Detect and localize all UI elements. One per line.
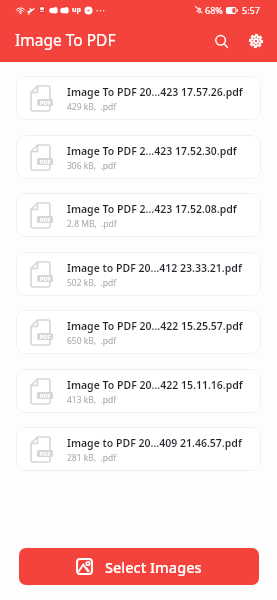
staticText: Select Images	[105, 557, 202, 577]
button[interactable]: Search	[207, 27, 235, 55]
button[interactable]: PDF	[16, 135, 261, 179]
button[interactable]: PDF	[16, 193, 261, 237]
button[interactable]: Settings	[242, 27, 270, 55]
staticText: Image To PDF 2...423 17.52.30.pdf	[67, 144, 237, 158]
button[interactable]: PDF	[16, 252, 261, 296]
staticText: PDF	[40, 99, 51, 106]
staticText: Image To PDF 20...422 15.25.57.pdf	[67, 319, 243, 333]
staticText: PDF	[40, 333, 51, 340]
staticText: Image To PDF 2...423 17.52.08.pdf	[67, 202, 237, 216]
staticText: 68%	[205, 4, 223, 16]
staticText: PDF	[40, 392, 51, 399]
staticText: PDF	[40, 158, 51, 165]
staticText: Image To PDF	[15, 29, 116, 50]
button[interactable]: PDF	[16, 310, 261, 354]
staticText: up	[72, 5, 81, 15]
staticText: 502 kB, .pdf	[67, 277, 117, 289]
staticText: Image to PDF 20...412 23.33.21.pdf	[67, 261, 242, 275]
staticText: 429 kB, .pdf	[67, 101, 117, 113]
staticText: 650 kB, .pdf	[67, 335, 117, 347]
staticText: 281 kB, .pdf	[67, 452, 117, 464]
button[interactable]: PDF	[16, 369, 261, 413]
staticText: PDF	[40, 275, 51, 282]
staticText: Image to PDF 20...409 21.46.57.pdf	[67, 436, 242, 450]
staticText: 5:57	[242, 4, 260, 16]
staticText: PDF	[40, 450, 51, 457]
staticText: 2.8 MB, .pdf	[67, 218, 117, 230]
button[interactable]: Select Images	[19, 548, 259, 585]
button[interactable]: PDF	[16, 76, 261, 120]
staticText: Image To PDF 20...422 15.11.16.pdf	[67, 378, 243, 392]
staticText: Image To PDF 20...423 17.57.26.pdf	[67, 85, 243, 99]
staticText: PDF	[40, 216, 51, 223]
staticText: 306 kB, .pdf	[67, 160, 117, 172]
button[interactable]: PDF	[16, 427, 261, 471]
staticText: 413 kB, .pdf	[67, 394, 117, 406]
